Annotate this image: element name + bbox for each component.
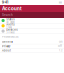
staticText: 1.2	[59, 49, 62, 52]
staticText: lll	[59, 1, 62, 4]
staticText: PREFERENCES	[2, 35, 19, 38]
staticText: On	[59, 40, 62, 43]
staticText: All good	[6, 21, 14, 23]
staticText: Devices	[6, 28, 17, 31]
staticText: Status	[6, 18, 14, 21]
staticText: General	[2, 40, 13, 43]
button[interactable]: Privacy	[0, 44, 64, 48]
staticText: Off	[58, 45, 62, 48]
button[interactable]: Alerts	[0, 23, 64, 29]
button[interactable]: About	[0, 48, 64, 53]
staticText: Account	[2, 6, 22, 11]
button[interactable]: General	[0, 40, 64, 44]
staticText: Alerts	[6, 23, 14, 26]
staticText: 2 new	[6, 26, 12, 29]
staticText: 3 linked	[6, 31, 14, 34]
staticText: Search	[2, 13, 13, 17]
staticText: About	[2, 49, 11, 52]
staticText: Privacy	[2, 45, 10, 48]
button[interactable]: Status	[0, 18, 64, 23]
staticText: 9:41	[2, 1, 8, 4]
button[interactable]: Devices	[0, 29, 64, 34]
